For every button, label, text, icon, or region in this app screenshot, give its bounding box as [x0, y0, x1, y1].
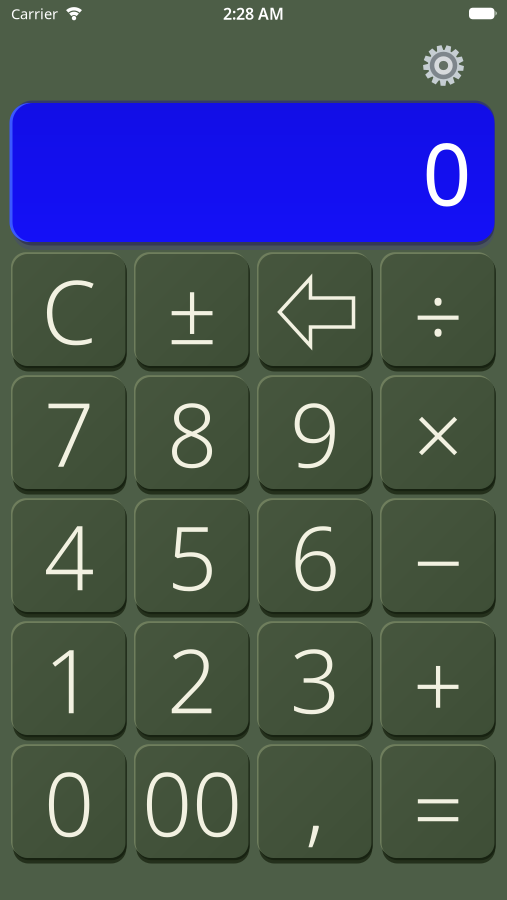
staticText: +	[413, 625, 463, 742]
staticText: ÷	[413, 256, 463, 373]
staticText: 6	[290, 498, 340, 614]
staticText: ×	[413, 375, 463, 491]
staticText: 8	[167, 375, 217, 491]
button[interactable]: ÷	[381, 254, 494, 366]
button[interactable]: =	[381, 746, 494, 858]
staticText: ,	[305, 744, 325, 860]
button[interactable]: ,	[258, 746, 371, 858]
staticText: 4	[44, 498, 94, 614]
button[interactable]: 3	[258, 623, 371, 735]
staticText: 0	[44, 744, 94, 860]
button[interactable]: ×	[381, 377, 494, 489]
button[interactable]: 4	[12, 500, 125, 612]
staticText: 2	[167, 621, 217, 737]
staticText: 1	[44, 621, 94, 737]
staticText: C	[41, 252, 96, 368]
button[interactable]: 6	[258, 500, 371, 612]
staticText: 0	[422, 116, 471, 229]
button[interactable]: 9	[258, 377, 371, 489]
button[interactable]: +	[381, 623, 494, 735]
staticText: 00	[142, 744, 242, 860]
button[interactable]: C	[12, 254, 125, 366]
button[interactable]: 8	[135, 377, 248, 489]
staticText: 5	[167, 498, 217, 614]
button[interactable]: 00	[135, 746, 248, 858]
button[interactable]: ±	[135, 254, 248, 366]
button[interactable]: 1	[12, 623, 125, 735]
staticText: ±	[167, 252, 217, 368]
button[interactable]: 7	[12, 377, 125, 489]
button[interactable]: 0	[12, 746, 125, 858]
button[interactable]: 2	[135, 623, 248, 735]
staticText: =	[413, 749, 463, 865]
staticText: −	[413, 502, 463, 619]
staticText: Carrier	[11, 4, 58, 23]
button[interactable]: Backspace	[258, 254, 371, 366]
button[interactable]: 5	[135, 500, 248, 612]
staticText: 2:28 AM	[223, 3, 284, 24]
staticText: 9	[290, 375, 340, 491]
staticText: 3	[290, 621, 340, 737]
button[interactable]: −	[381, 500, 494, 612]
button[interactable]: Settings	[423, 45, 464, 86]
staticText: 7	[44, 375, 94, 491]
